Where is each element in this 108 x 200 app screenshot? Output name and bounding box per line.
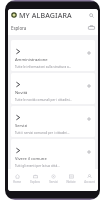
staticText: Notizie bbox=[66, 180, 76, 184]
button[interactable]: Amministrazione bbox=[11, 40, 95, 71]
button[interactable]: Aggiungi ai preferiti bbox=[86, 50, 92, 56]
staticText: MY ALBAGIARA bbox=[19, 10, 72, 20]
button[interactable]: Notizie bbox=[62, 174, 80, 184]
staticText: Tutti gli eventi per la tua città… bbox=[15, 164, 60, 168]
button[interactable]: Aggiungi ai preferiti bbox=[86, 149, 92, 155]
button[interactable]: Vivere il comune bbox=[11, 139, 95, 170]
staticText: Tutte le informazioni sulla struttura a… bbox=[15, 65, 72, 69]
button[interactable]: Novità bbox=[11, 73, 95, 104]
staticText: Account bbox=[84, 180, 95, 184]
staticText: Esplora bbox=[11, 25, 27, 31]
staticText: Servizi bbox=[49, 180, 58, 184]
button[interactable]: Servizi bbox=[87, 23, 96, 32]
staticText: Home bbox=[13, 180, 21, 184]
staticText: Vivere il comune bbox=[15, 156, 47, 162]
staticText: Esplora bbox=[30, 180, 40, 184]
button[interactable]: Esplora bbox=[26, 174, 44, 184]
staticText: Novità bbox=[15, 90, 28, 96]
staticText: Amministrazione bbox=[15, 57, 48, 63]
staticText: Tutti i servizi comunali per i cittadini… bbox=[15, 131, 70, 135]
button[interactable]: Home bbox=[8, 174, 26, 184]
button[interactable]: Servizi bbox=[11, 106, 95, 137]
staticText: Servizi bbox=[15, 123, 28, 129]
button[interactable]: Account bbox=[80, 174, 98, 184]
staticText: Tutte le novità comunali per i cittadini… bbox=[15, 98, 73, 102]
button[interactable]: Aggiungi ai preferiti bbox=[86, 83, 92, 89]
button[interactable]: Cerca bbox=[87, 11, 96, 20]
button[interactable]: Aggiungi ai preferiti bbox=[86, 116, 92, 122]
button[interactable]: Servizi bbox=[44, 174, 62, 184]
